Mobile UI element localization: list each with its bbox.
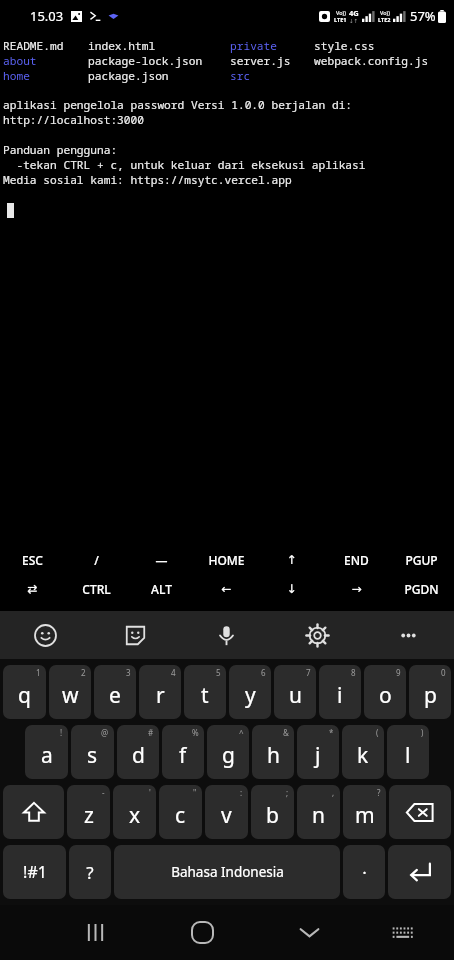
staticText: * [329,727,334,738]
button[interactable]: ↓ [259,574,324,603]
staticText: ( [376,727,379,738]
button[interactable]: , [297,785,340,839]
button[interactable]: Voice input [181,611,272,659]
staticText: Media sosial kami: https://msytc.vercel.… [3,172,292,187]
staticText: ↓ [286,582,297,596]
staticText: ^ [239,727,244,738]
button[interactable]: ⇄ [0,574,64,603]
button[interactable]: 0 [409,665,451,719]
button[interactable]: " [159,785,202,839]
button[interactable]: 9 [364,665,406,719]
staticText: , [332,787,335,798]
button[interactable]: & [252,725,294,779]
staticText: s [87,741,98,770]
button[interactable]: Recents [60,905,130,960]
button[interactable]: ' [113,785,156,839]
button[interactable]: 6 [229,665,271,719]
button[interactable]: Hide keyboard [275,905,344,960]
button[interactable]: @ [71,725,114,779]
button[interactable]: 2 [49,665,91,719]
button[interactable]: # [117,725,159,779]
staticText: r [156,681,165,710]
staticText: → [351,582,362,596]
button[interactable]: !#1 [3,845,66,899]
staticText: ↓↑ [349,18,359,24]
staticText: ALT [151,581,172,597]
button[interactable]: Backspace [389,785,451,839]
button[interactable]: END [324,545,389,574]
button[interactable]: 8 [319,665,361,719]
button[interactable]: PGDN [389,574,454,603]
button[interactable]: : [205,785,248,839]
staticText: home [3,68,30,83]
button[interactable]: ? [69,845,111,899]
staticText: t [201,681,209,710]
button[interactable]: Settings [272,611,363,659]
staticText: : [240,787,243,798]
button[interactable]: 1 [3,665,46,719]
staticText: @ [101,727,109,738]
button[interactable]: ; [251,785,294,839]
button[interactable]: ? [343,785,386,839]
staticText: ⇄ [27,582,38,596]
staticText: g [222,741,235,770]
button[interactable]: ALT [129,574,194,603]
button[interactable]: PGUP [389,545,454,574]
staticText: Panduan pengguna: [3,142,118,157]
staticText: 5 [216,667,221,678]
staticText: y [245,681,256,710]
button[interactable]: Switch keyboard [368,905,437,960]
button[interactable]: ESC [0,545,64,574]
button[interactable]: Stickers [90,611,181,659]
staticText: % [192,727,199,738]
staticText: l [405,741,411,770]
staticText: ? [86,861,94,884]
button[interactable]: 4 [139,665,181,719]
staticText: 4G [349,8,359,18]
button[interactable]: · [343,845,385,899]
button[interactable]: / [64,545,129,574]
button[interactable]: CTRL [64,574,129,603]
staticText: ↑ [286,553,297,567]
staticText: PGDN [404,581,439,597]
button[interactable]: HOME [194,545,259,574]
button[interactable]: 5 [184,665,226,719]
button[interactable]: ↑ [259,545,324,574]
button[interactable]: More options [363,611,454,659]
button[interactable]: * [297,725,339,779]
staticText: 9 [396,667,401,678]
staticText: about [3,53,37,68]
staticText: / [94,552,99,568]
button[interactable]: → [324,574,389,603]
staticText: aplikasi pengelola password Versi 1.0.0 … [3,97,353,112]
staticText: v [221,801,232,830]
staticText: ! [60,727,63,738]
button[interactable]: Shift [3,785,64,839]
staticText: index.html [88,38,156,53]
staticText: ' [149,787,151,798]
button[interactable]: ^ [207,725,249,779]
staticText: b [266,801,279,830]
button[interactable]: ← [194,574,259,603]
staticText: !#1 [23,861,47,883]
staticText: -tekan CTRL + c, untuk keluar dari eksek… [3,157,366,172]
button[interactable]: Home [168,905,237,960]
button[interactable]: ! [25,725,68,779]
button[interactable]: 7 [274,665,316,719]
staticText: 6 [261,667,266,678]
staticText: n [312,801,325,830]
staticText: 7 [306,667,311,678]
button[interactable]: - [67,785,110,839]
staticText: 57% [410,7,436,25]
button[interactable]: Emoji [0,611,90,659]
button[interactable]: Bahasa Indonesia [114,845,340,899]
button[interactable]: Enter [388,845,451,899]
button[interactable]: ) [387,725,429,779]
staticText: 3 [126,667,131,678]
button[interactable]: — [129,545,194,574]
button[interactable]: % [162,725,204,779]
button[interactable]: 3 [94,665,136,719]
staticText: x [129,801,141,830]
button[interactable]: ( [342,725,384,779]
staticText: d [132,741,145,770]
